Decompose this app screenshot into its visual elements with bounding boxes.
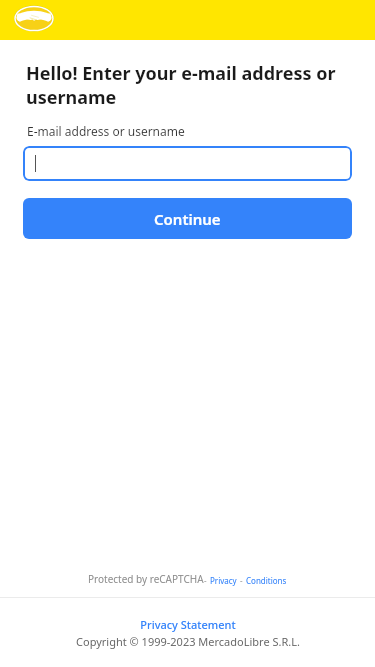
button[interactable]: Conditions — [246, 575, 287, 586]
staticText: Privacy Statement — [140, 617, 236, 632]
button[interactable]: Privacy Statement — [0, 617, 375, 632]
staticText: Continue — [154, 209, 221, 229]
staticText: Copyright © 1999-2023 MercadoLibre S.R.L… — [76, 634, 300, 649]
staticText: - — [204, 575, 207, 586]
button[interactable]: MercadoLibre home — [14, 3, 54, 34]
button[interactable]: Continue — [23, 198, 352, 239]
staticText: E-mail address or username — [27, 123, 185, 139]
staticText: Protected by reCAPTCHA — [88, 572, 204, 586]
staticText: Hello! Enter your e-mail address or user… — [26, 61, 353, 109]
staticText: - — [240, 575, 243, 586]
staticText: Conditions — [246, 575, 287, 586]
button[interactable]: E-mail address or username input — [23, 146, 352, 181]
button[interactable]: Privacy — [210, 575, 237, 586]
staticText: Privacy — [210, 575, 237, 586]
